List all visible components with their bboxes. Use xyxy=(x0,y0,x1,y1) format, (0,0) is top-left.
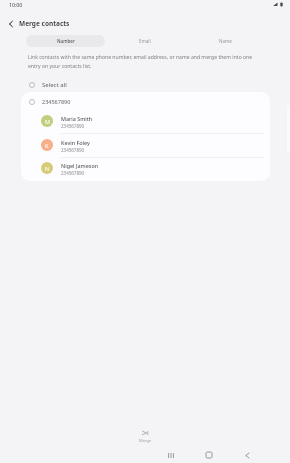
staticText: 10:00 xyxy=(9,1,23,8)
staticText: N xyxy=(45,165,50,172)
staticText: 234567890 xyxy=(61,147,85,153)
staticText: Name xyxy=(219,38,232,44)
staticText: 234567890 xyxy=(61,123,85,129)
button[interactable]: Name xyxy=(185,35,265,47)
staticText: K xyxy=(45,142,49,149)
button[interactable]: N xyxy=(21,157,270,181)
staticText: Maria Smith xyxy=(61,115,93,122)
staticText: 234567890 xyxy=(42,98,71,105)
staticText: Merge xyxy=(139,438,152,443)
staticText: Nigel Jameson xyxy=(61,162,99,169)
button[interactable]: M xyxy=(21,110,270,134)
button[interactable]: Merge xyxy=(0,431,290,443)
staticText: Link contacts with the same phone number… xyxy=(28,54,258,70)
staticText: Merge contacts xyxy=(19,19,70,28)
staticText: 234567890 xyxy=(61,170,85,176)
button[interactable]: K xyxy=(21,134,270,158)
button[interactable]: Back xyxy=(2,15,19,32)
staticText: Number xyxy=(57,38,75,44)
button[interactable]: Email xyxy=(105,35,185,47)
button[interactable]: Select all xyxy=(0,76,290,93)
staticText: Kevin Foley xyxy=(61,139,90,146)
button[interactable]: Back xyxy=(236,444,258,463)
button[interactable]: Recent apps xyxy=(160,444,182,463)
staticText: Select all xyxy=(42,81,67,89)
button[interactable]: Home xyxy=(198,444,220,463)
button[interactable]: 234567890 xyxy=(21,92,270,111)
staticText: M xyxy=(45,118,50,125)
staticText: Email xyxy=(139,38,151,44)
button[interactable]: Number xyxy=(26,35,105,47)
